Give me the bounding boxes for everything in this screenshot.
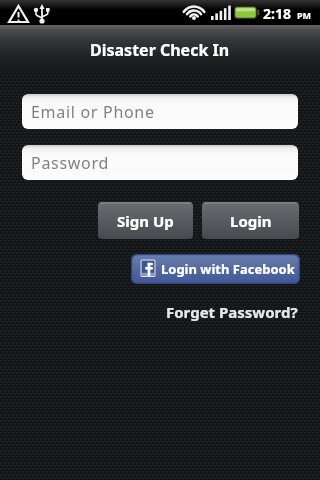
staticText: PM — [297, 9, 312, 21]
staticText: Email or Phone — [31, 101, 155, 123]
staticText: Login — [230, 211, 272, 231]
staticText: Login with Facebook — [161, 260, 295, 278]
button[interactable]: Sign Up — [98, 202, 193, 239]
staticText: Password — [31, 152, 109, 174]
button[interactable]: Password — [22, 145, 298, 180]
staticText: Forget Password? — [166, 302, 298, 322]
button[interactable]: Login — [202, 202, 299, 239]
button[interactable]: Forget Password? — [138, 302, 298, 322]
staticText: Sign Up — [117, 211, 174, 231]
staticText: 2:18 — [263, 4, 291, 23]
button[interactable]: Login with Facebook — [131, 254, 300, 284]
staticText: Disaster Check In — [90, 39, 230, 61]
button[interactable]: Email or Phone — [22, 94, 298, 129]
